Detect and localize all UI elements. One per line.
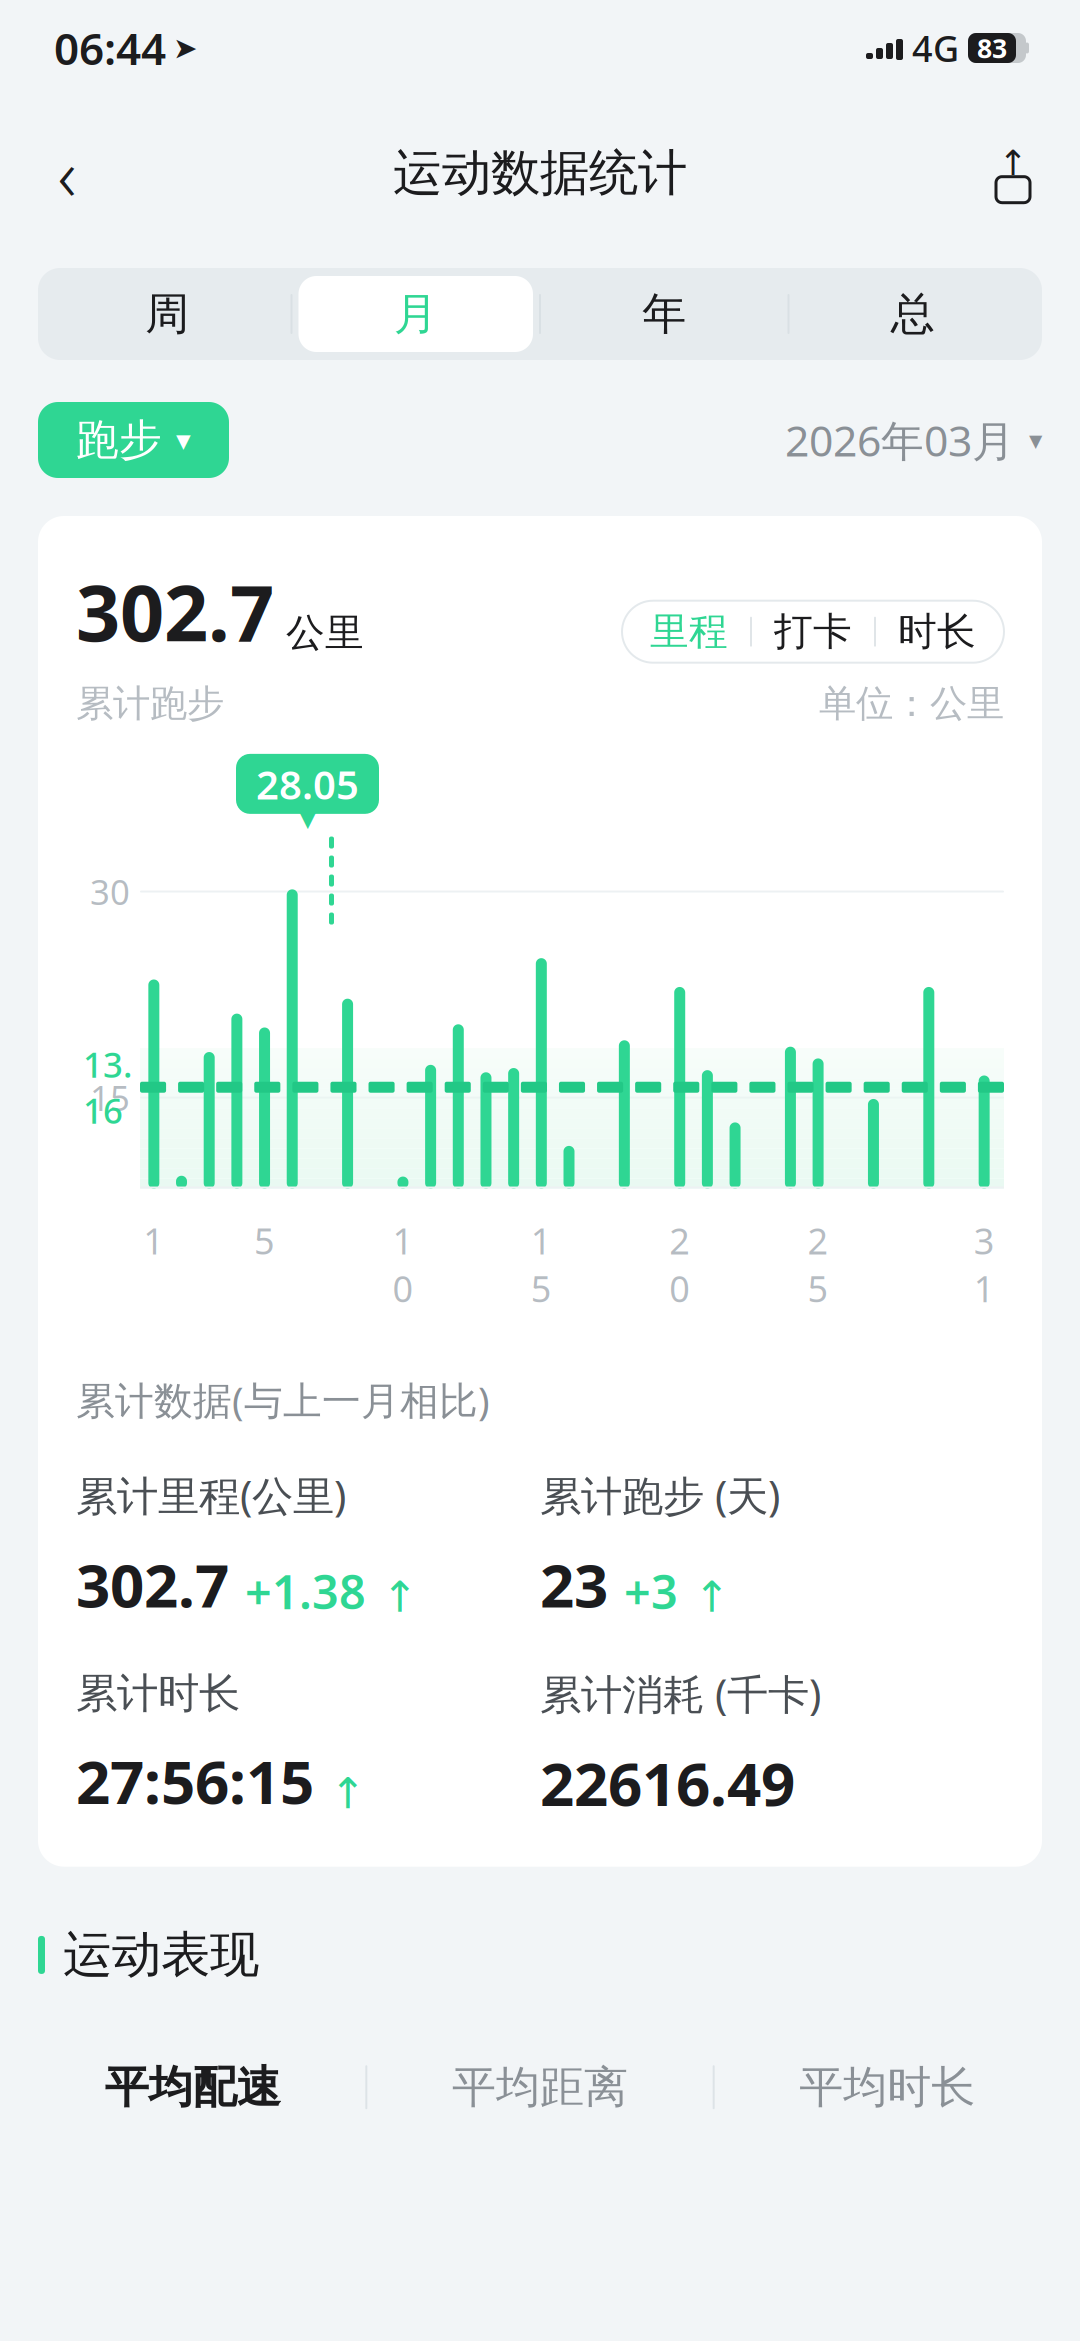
- staticText: 1: [143, 1216, 164, 1264]
- staticText: 15: [90, 1075, 130, 1121]
- staticText: ▾: [176, 423, 191, 457]
- button[interactable]: 时长: [876, 601, 998, 663]
- staticText: 平均距离: [452, 2060, 628, 2114]
- staticText: 13.16: [83, 1041, 132, 1133]
- button[interactable]: 分享: [976, 136, 1050, 210]
- staticText: 平均时长: [799, 2060, 975, 2114]
- staticText: ‹: [57, 125, 76, 221]
- button[interactable]: 打卡: [752, 601, 874, 663]
- button[interactable]: 跑步: [38, 402, 229, 478]
- staticText: 单位：公里: [819, 681, 1004, 727]
- staticText: 83: [977, 30, 1007, 66]
- button[interactable]: 年: [541, 268, 787, 360]
- staticText: ↑: [330, 1769, 366, 1818]
- staticText: 302.7: [76, 560, 274, 663]
- button[interactable]: 2026年03月: [785, 402, 1042, 478]
- staticText: 28.05: [256, 757, 359, 810]
- staticText: 2026年03月: [785, 412, 1015, 468]
- staticText: 23: [540, 1544, 608, 1624]
- staticText: 5: [254, 1216, 275, 1264]
- staticText: 时长: [898, 608, 976, 655]
- staticText: ▾: [1029, 425, 1042, 455]
- staticText: 31: [974, 1216, 995, 1312]
- button[interactable]: 平均配速: [20, 2051, 365, 2123]
- staticText: 年: [642, 287, 686, 341]
- staticText: 累计跑步 (天): [540, 1467, 780, 1522]
- staticText: ➤: [173, 31, 198, 65]
- staticText: 累计里程(公里): [76, 1467, 346, 1522]
- button[interactable]: 总: [789, 268, 1036, 360]
- staticText: 30: [90, 868, 130, 914]
- staticText: 302.7: [76, 1544, 229, 1624]
- staticText: 06:44: [54, 19, 166, 77]
- staticText: 4G: [912, 24, 959, 72]
- staticText: ▾: [299, 798, 316, 837]
- staticText: 平均配速: [105, 2060, 281, 2114]
- staticText: 公里: [286, 609, 364, 657]
- staticText: 总: [891, 287, 935, 341]
- staticText: 月: [394, 287, 438, 341]
- staticText: 运动数据统计: [393, 143, 687, 203]
- staticText: 运动表现: [63, 1925, 259, 1985]
- staticText: +1.38: [245, 1560, 366, 1622]
- staticText: ↑: [694, 1573, 730, 1621]
- staticText: 22616.49: [540, 1743, 795, 1823]
- button[interactable]: 平均时长: [715, 2051, 1060, 2123]
- button[interactable]: 月: [292, 268, 539, 360]
- staticText: +3: [624, 1560, 678, 1622]
- staticText: 里程: [650, 608, 728, 655]
- staticText: ↑: [998, 143, 1027, 183]
- staticText: 累计消耗 (千卡): [540, 1666, 821, 1721]
- button[interactable]: 里程: [628, 601, 750, 663]
- staticText: 打卡: [774, 608, 852, 655]
- staticText: 累计时长: [76, 1668, 240, 1719]
- button[interactable]: 周: [44, 268, 290, 360]
- staticText: 25: [808, 1216, 829, 1312]
- staticText: 跑步: [76, 414, 162, 466]
- staticText: 15: [531, 1216, 552, 1312]
- staticText: 20: [669, 1216, 690, 1312]
- button[interactable]: 返回: [30, 136, 104, 210]
- staticText: 10: [392, 1216, 413, 1312]
- button[interactable]: 平均距离: [367, 2051, 713, 2123]
- staticText: 累计跑步: [76, 681, 224, 727]
- staticText: 周: [145, 287, 189, 341]
- staticText: 累计数据(与上一月相比): [76, 1374, 490, 1425]
- staticText: 27:56:15: [76, 1741, 314, 1821]
- staticText: ↑: [382, 1573, 418, 1621]
